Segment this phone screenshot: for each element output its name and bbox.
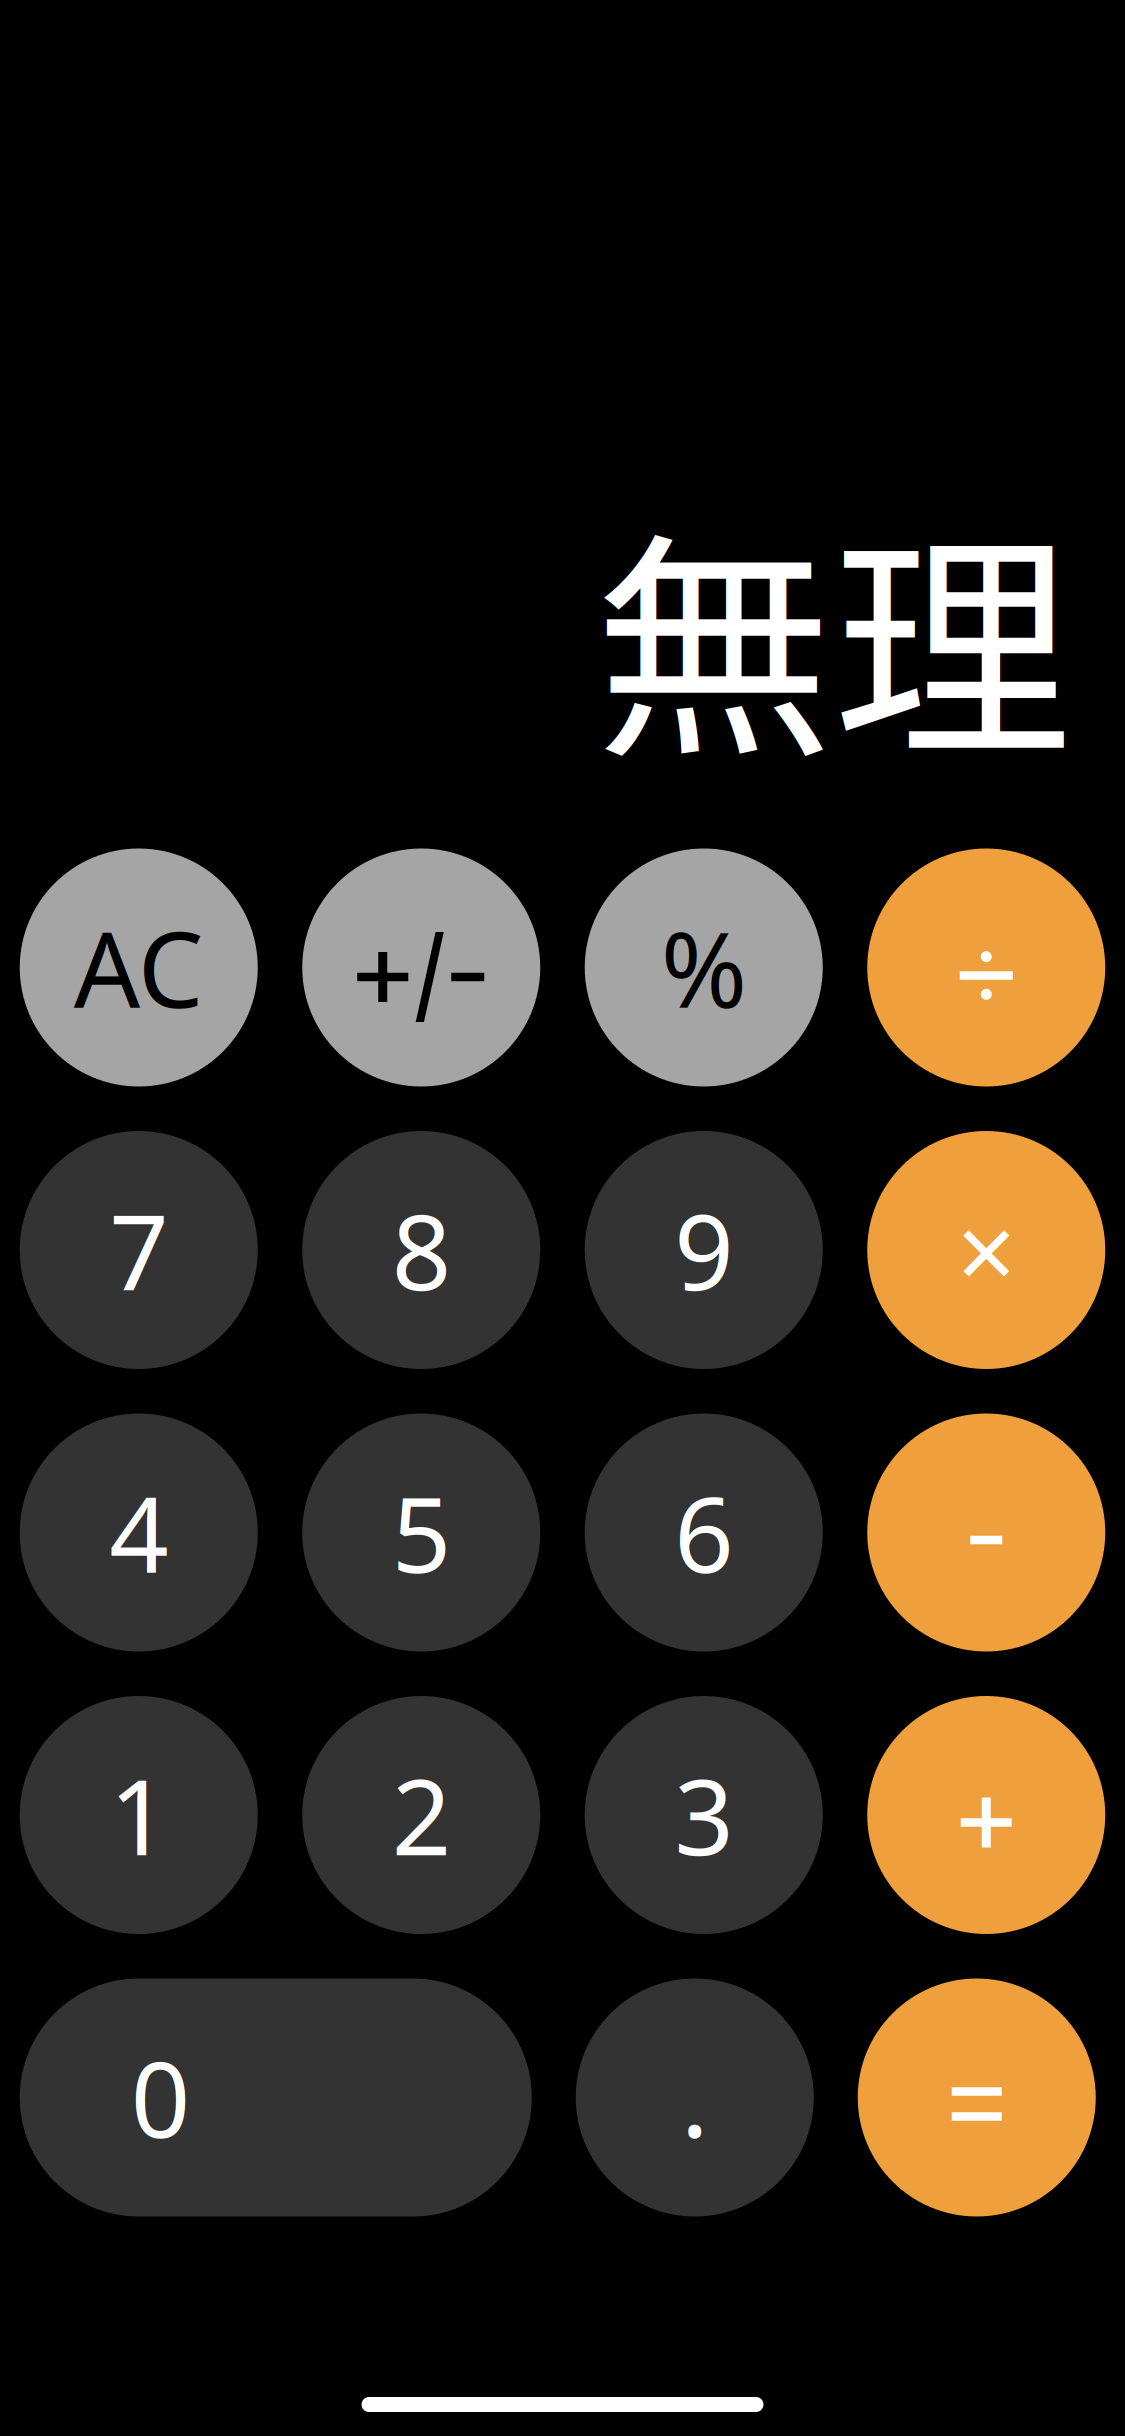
- button[interactable]: .: [576, 1978, 814, 2216]
- button[interactable]: AC: [20, 848, 258, 1086]
- button[interactable]: 4: [20, 1413, 258, 1651]
- staticText: %: [661, 898, 747, 1036]
- button[interactable]: 1: [20, 1696, 258, 1934]
- staticText: 7: [109, 1181, 168, 1319]
- button[interactable]: Divide: [867, 848, 1105, 1086]
- staticText: 9: [674, 1181, 733, 1319]
- staticText: AC: [74, 898, 204, 1036]
- staticText: 4: [109, 1463, 168, 1601]
- button[interactable]: Plus or minus: [302, 848, 540, 1086]
- staticText: 5: [392, 1463, 451, 1601]
- staticText: 2: [392, 1746, 451, 1884]
- staticText: 1: [109, 1746, 168, 1884]
- button[interactable]: 2: [302, 1696, 540, 1934]
- button[interactable]: ×: [867, 1131, 1105, 1369]
- staticText: ×: [957, 1181, 1016, 1319]
- button[interactable]: 6: [585, 1413, 823, 1651]
- staticText: 無理: [594, 459, 1072, 804]
- staticText: 8: [392, 1181, 451, 1319]
- button[interactable]: 7: [20, 1131, 258, 1369]
- button[interactable]: Minus: [867, 1413, 1105, 1651]
- button[interactable]: 8: [302, 1131, 540, 1369]
- button[interactable]: 5: [302, 1413, 540, 1651]
- button[interactable]: 9: [585, 1131, 823, 1369]
- staticText: 3: [674, 1746, 733, 1884]
- staticText: .: [681, 2028, 709, 2166]
- button[interactable]: 3: [585, 1696, 823, 1934]
- staticText: 0: [131, 2028, 190, 2166]
- button[interactable]: Plus: [867, 1696, 1105, 1934]
- staticText: 6: [674, 1463, 733, 1601]
- button[interactable]: %: [585, 848, 823, 1086]
- button[interactable]: 0: [20, 1978, 532, 2216]
- button[interactable]: Equals: [858, 1978, 1096, 2216]
